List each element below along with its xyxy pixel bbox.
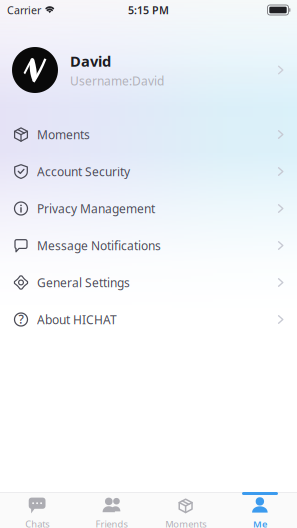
button[interactable]: ? xyxy=(0,301,297,338)
button[interactable]: Chats xyxy=(0,492,74,528)
staticText: Username:David xyxy=(70,73,164,89)
staticText: About HICHAT xyxy=(37,311,117,327)
staticText: General Settings xyxy=(37,274,130,290)
staticText: 5:15 PM xyxy=(128,3,169,17)
staticText: Friends xyxy=(95,518,127,528)
button[interactable]: Privacy Management xyxy=(0,190,297,227)
staticText: David xyxy=(70,51,111,71)
staticText: Me xyxy=(253,518,267,528)
button[interactable]: David xyxy=(0,47,297,93)
staticText: Moments xyxy=(165,518,206,528)
button[interactable]: Message Notifications xyxy=(0,227,297,264)
button[interactable]: General Settings xyxy=(0,264,297,301)
staticText: Message Notifications xyxy=(37,237,161,253)
staticText: Privacy Management xyxy=(37,200,155,216)
staticText: ? xyxy=(18,311,23,327)
staticText: Moments xyxy=(37,126,90,142)
button[interactable]: Me xyxy=(223,492,297,528)
staticText: Carrier xyxy=(7,3,41,17)
staticText: Account Security xyxy=(37,163,130,179)
button[interactable]: Moments xyxy=(0,116,297,153)
button[interactable]: Moments xyxy=(148,492,223,528)
button[interactable]: Friends xyxy=(74,492,148,528)
staticText: Chats xyxy=(25,518,49,528)
button[interactable]: Account Security xyxy=(0,153,297,190)
